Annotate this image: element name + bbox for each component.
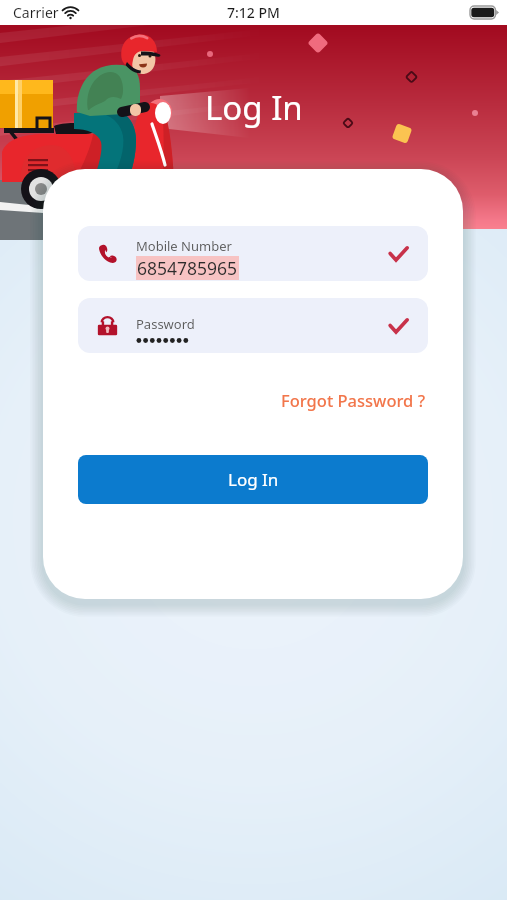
staticText: Forgot Password ?	[281, 389, 426, 411]
staticText: 7:12 PM	[227, 3, 280, 22]
staticText: Carrier	[13, 3, 59, 22]
staticText: Log In	[205, 85, 303, 130]
staticText: Password	[136, 315, 195, 333]
button[interactable]: Forgot Password ?	[279, 386, 428, 414]
button[interactable]: Mobile Number	[78, 226, 428, 281]
button[interactable]: Log In	[78, 455, 428, 504]
staticText: Mobile Number	[136, 237, 232, 255]
staticText: 6854785965	[137, 256, 238, 280]
staticText: Log In	[228, 468, 279, 491]
button[interactable]: Password	[78, 298, 428, 353]
